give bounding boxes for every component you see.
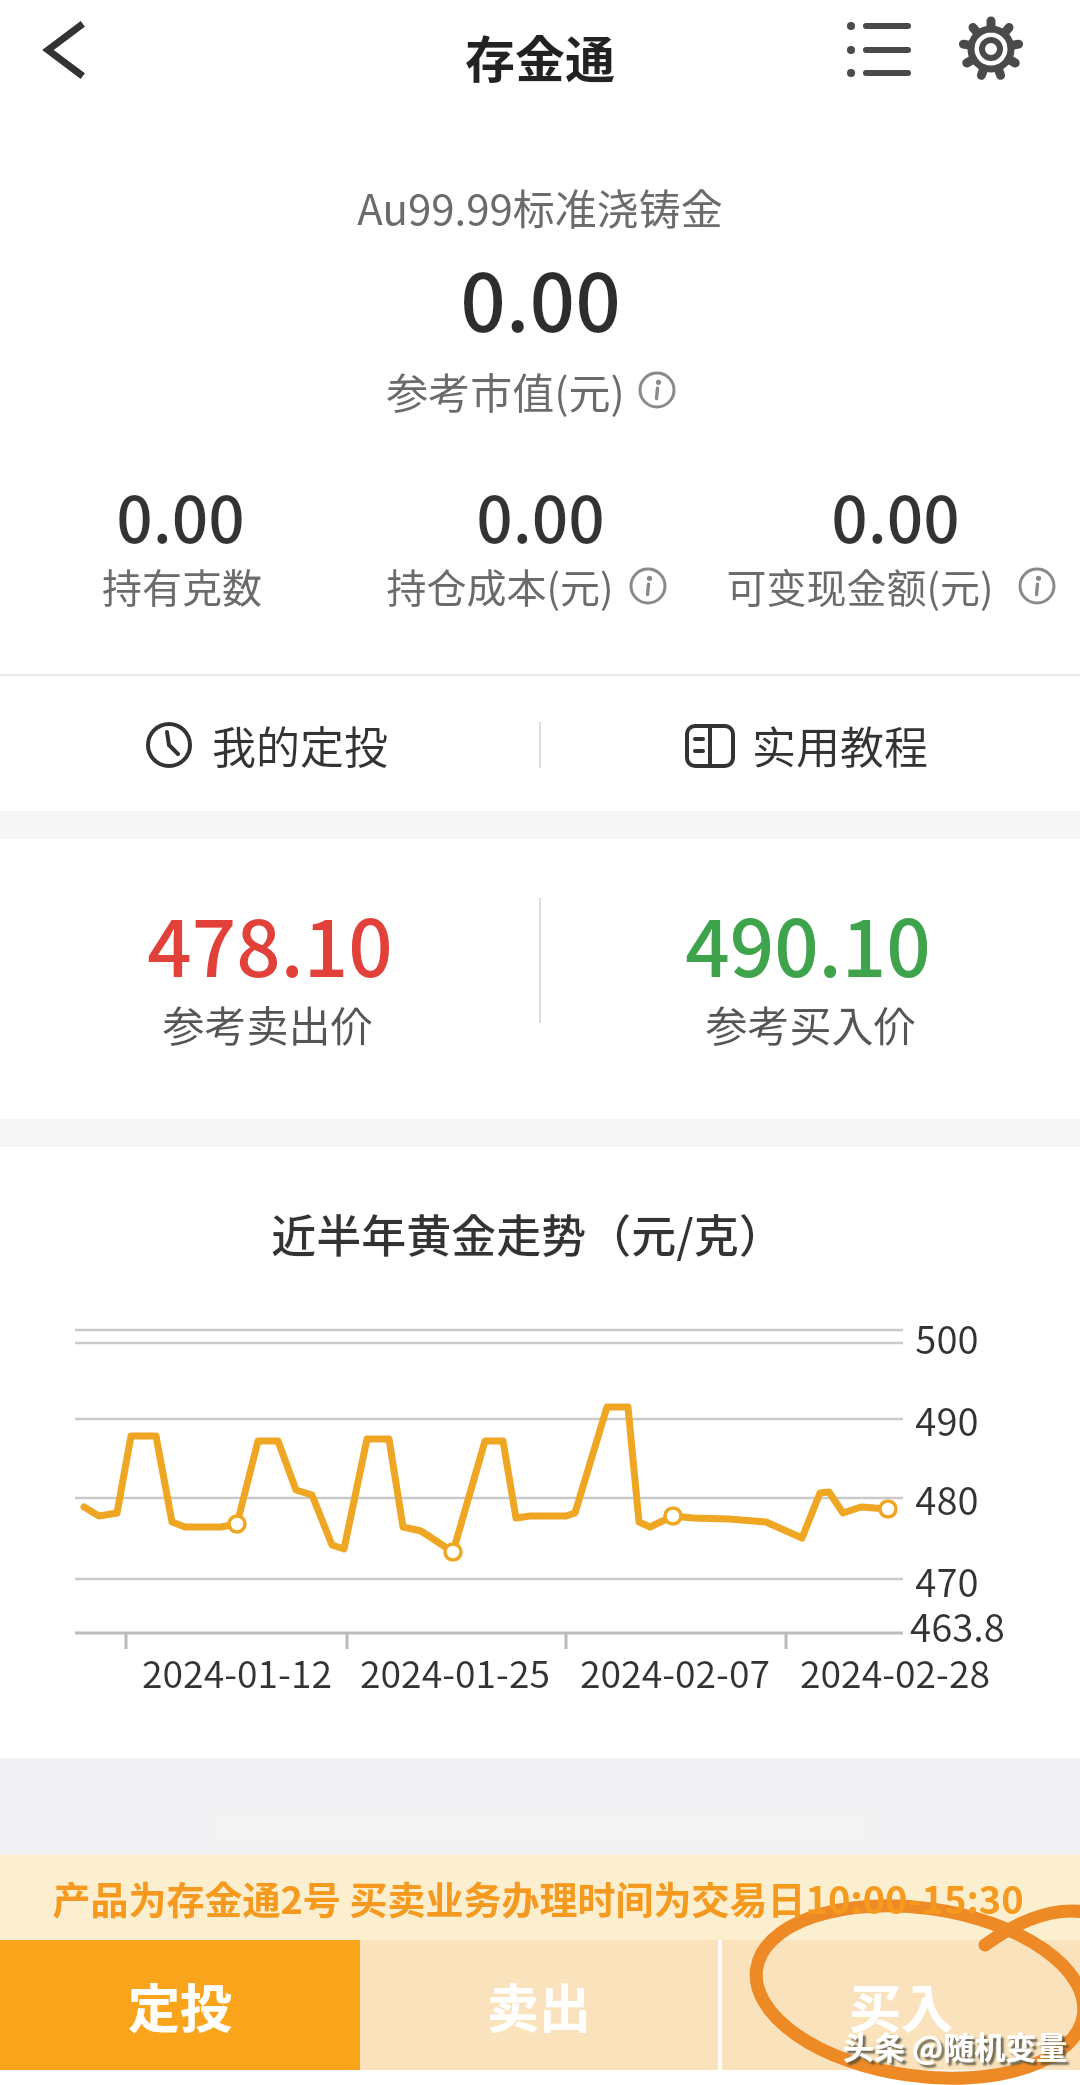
button[interactable]: 实用教程 — [540, 700, 1080, 790]
staticText: 参考买入价 — [705, 993, 916, 1054]
staticText: 卖出 — [487, 1968, 592, 2043]
staticText: 参考卖出价 — [162, 993, 373, 1054]
button[interactable]: 买入 — [722, 1940, 1080, 2070]
staticText: Au99.99标准浇铸金 — [357, 176, 723, 237]
button[interactable] — [940, 5, 1050, 95]
staticText: 478.10 — [147, 887, 393, 1000]
staticText: 持仓成本(元) — [386, 557, 614, 615]
button[interactable] — [28, 10, 118, 100]
staticText: 463.8 — [910, 1598, 1005, 1653]
staticText: 0.00 — [116, 469, 245, 562]
staticText: 2024-01-25 — [360, 1645, 550, 1699]
staticText: 480 — [915, 1471, 979, 1526]
staticText: 我的定投 — [212, 713, 388, 777]
staticText: 参考市值(元) — [386, 360, 625, 421]
staticText: 2024-01-12 — [142, 1645, 332, 1699]
staticText: 470 — [915, 1553, 979, 1608]
staticText: 存金通 — [465, 20, 615, 92]
staticText: 490 — [915, 1392, 979, 1447]
staticText: 2024-02-28 — [800, 1645, 990, 1699]
staticText: 近半年黄金走势（元/克） — [271, 1201, 784, 1266]
staticText: 买入 — [849, 1968, 954, 2043]
staticText: 0.00 — [831, 469, 960, 562]
staticText: 0.00 — [460, 239, 621, 355]
staticText: 0.00 — [476, 469, 605, 562]
button[interactable]: 卖出 — [360, 1940, 718, 2070]
staticText: 500 — [915, 1310, 979, 1365]
staticText: 2024-02-07 — [580, 1645, 770, 1699]
staticText: 持有克数 — [102, 557, 262, 615]
staticText: 490.10 — [685, 887, 931, 1000]
staticText: 实用教程 — [752, 713, 928, 777]
staticText: 头条 @随机变量 — [843, 2023, 1068, 2068]
button[interactable] — [820, 5, 930, 95]
staticText: 定投 — [128, 1968, 233, 2043]
button[interactable]: 定投 — [0, 1940, 360, 2070]
staticText: 可变现金额(元) — [726, 557, 994, 615]
staticText: 产品为存金通2号 买卖业务办理时间为交易日10:00-15:30 — [52, 1870, 1024, 1925]
button[interactable]: 我的定投 — [0, 700, 540, 790]
